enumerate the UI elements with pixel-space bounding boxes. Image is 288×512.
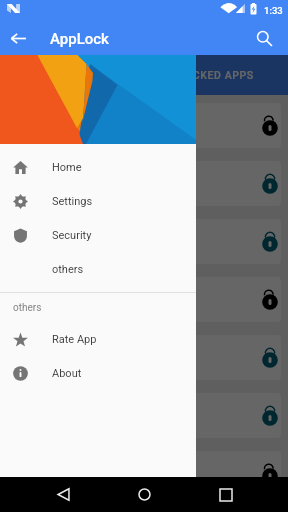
button[interactable]: Search xyxy=(246,22,282,55)
staticText: ALL APPS xyxy=(46,69,99,81)
button[interactable]: Settings xyxy=(0,184,196,218)
button[interactable]: Recent apps xyxy=(207,477,245,512)
button[interactable] xyxy=(7,219,281,264)
button[interactable]: Home xyxy=(0,150,196,184)
button[interactable]: ALL APPS xyxy=(0,55,144,95)
button[interactable] xyxy=(7,277,281,322)
button[interactable] xyxy=(7,393,281,438)
button[interactable]: Back xyxy=(44,477,82,512)
staticText: Security xyxy=(52,229,92,242)
staticText: Home xyxy=(52,161,82,174)
staticText: AppLock xyxy=(50,30,109,48)
button[interactable]: Rate App xyxy=(0,322,196,356)
staticText: others xyxy=(52,263,84,276)
staticText: others xyxy=(13,302,42,314)
button[interactable] xyxy=(7,103,281,148)
button[interactable] xyxy=(7,335,281,380)
staticText: About xyxy=(52,367,82,380)
button[interactable]: About xyxy=(0,356,196,390)
button[interactable] xyxy=(7,161,281,206)
button[interactable]: Security xyxy=(0,218,196,252)
staticText: 1:33 xyxy=(264,5,283,16)
button[interactable] xyxy=(7,451,281,496)
button[interactable]: Back xyxy=(0,22,36,55)
staticText: LOCKED APPS xyxy=(179,69,254,81)
staticText: Rate App xyxy=(52,333,97,346)
staticText: Settings xyxy=(52,195,93,208)
button[interactable]: LOCKED APPS xyxy=(144,55,288,95)
button[interactable]: Home xyxy=(125,477,163,512)
button[interactable]: others xyxy=(0,252,196,286)
